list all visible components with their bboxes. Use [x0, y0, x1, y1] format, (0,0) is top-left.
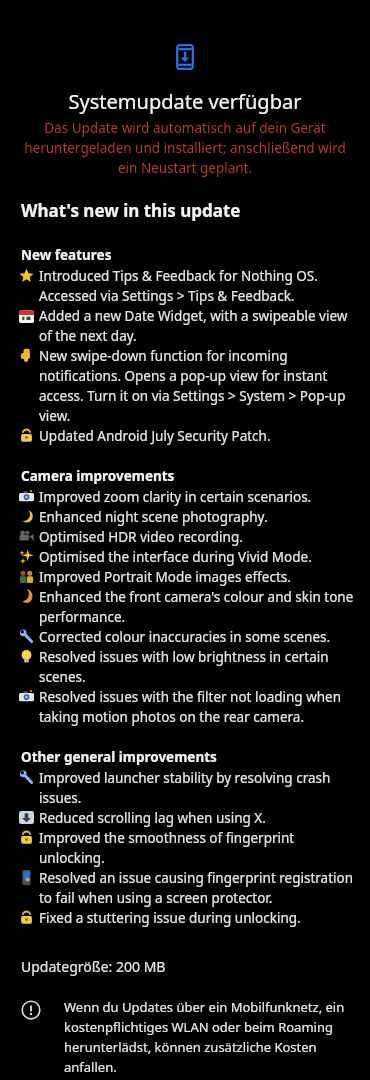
staticText: Improved Portrait Mode images effects. [39, 566, 291, 586]
staticText: Das Update wird automatisch auf dein Ger… [23, 119, 347, 177]
staticText: Added a new Date Widget, with a swipeabl… [39, 305, 354, 345]
staticText: New features [21, 246, 112, 264]
staticText: New swipe-down function for incoming not… [39, 345, 354, 425]
staticText: Optimised HDR video recording. [39, 526, 243, 546]
staticText: Enhanced night scene photography. [39, 506, 268, 526]
staticText: Improved zoom clarity in certain scenari… [39, 486, 312, 506]
staticText: Other general improvements [21, 748, 217, 766]
staticText: Systemupdate verfügbar [16, 88, 354, 115]
staticText: Optimised the interface during Vivid Mod… [39, 546, 312, 566]
staticText: Resolved issues with the filter not load… [39, 686, 354, 726]
staticText: Wenn du Updates über ein Mobilfunknetz, … [64, 998, 352, 1076]
staticText: Corrected colour inaccuracies in some sc… [39, 626, 331, 646]
other: System update [172, 44, 198, 70]
staticText: Updated Android July Security Patch. [39, 425, 271, 445]
staticText: Improved the smoothness of fingerprint u… [39, 827, 354, 867]
staticText: Enhanced the front camera's colour and s… [39, 586, 354, 626]
staticText: Fixed a stuttering issue during unlockin… [39, 907, 301, 927]
staticText: What's new in this update [21, 199, 241, 222]
staticText: Reduced scrolling lag when using X. [39, 807, 266, 827]
staticText: Updategröße: 200 MB [21, 957, 166, 976]
staticText: Camera improvements [21, 467, 175, 485]
staticText: Resolved issues with low brightness in c… [39, 646, 354, 686]
staticText: Introduced Tips & Feedback for Nothing O… [39, 265, 354, 305]
staticText: Improved launcher stability by resolving… [39, 767, 354, 807]
staticText: Resolved an issue causing fingerprint re… [39, 867, 354, 907]
